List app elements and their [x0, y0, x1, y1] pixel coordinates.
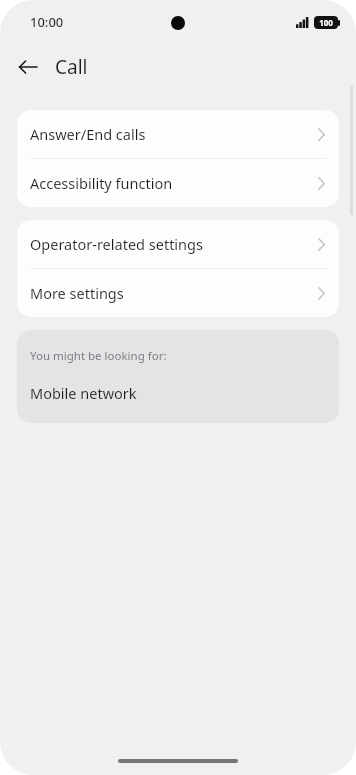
- staticText: Answer/End calls: [30, 124, 146, 144]
- staticText: 100: [319, 17, 333, 28]
- staticText: Operator-related settings: [30, 234, 203, 254]
- button[interactable]: Answer/End calls: [17, 110, 339, 158]
- button[interactable]: Operator-related settings: [17, 220, 339, 268]
- button[interactable]: Accessibility function: [17, 159, 339, 207]
- staticText: More settings: [30, 283, 124, 303]
- staticText: 10:00: [30, 13, 64, 31]
- staticText: Mobile network: [30, 383, 137, 403]
- staticText: You might be looking for:: [30, 348, 167, 364]
- button[interactable]: You might be looking for:: [17, 330, 339, 423]
- staticText: Call: [55, 54, 88, 80]
- button[interactable]: Back: [12, 51, 44, 83]
- button[interactable]: More settings: [17, 269, 339, 317]
- staticText: Accessibility function: [30, 173, 173, 193]
